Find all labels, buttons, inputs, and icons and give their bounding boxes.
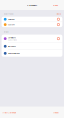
button[interactable]: Calendar info: [56, 23, 60, 27]
button[interactable]: Birthdays: [2, 43, 62, 50]
staticText: OTHER: [4, 31, 9, 33]
button[interactable]: Custom: [2, 22, 62, 27]
staticText: Calendars: [27, 3, 37, 7]
staticText: Subscribed: [8, 39, 17, 41]
staticText: Add Calendar: [2, 111, 16, 114]
staticText: ON MY IPHONE: [4, 13, 14, 15]
staticText: Inbox: [53, 111, 58, 114]
staticText: Custom: [8, 23, 15, 26]
button[interactable]: Siri Found in Apps: [2, 50, 62, 57]
staticText: US Holidays: [8, 36, 16, 39]
button[interactable]: Calendar: [2, 17, 62, 22]
button[interactable]: Hide All: [56, 13, 60, 15]
button[interactable]: US Holidays: [2, 35, 62, 43]
button[interactable]: Inbox: [53, 110, 58, 115]
staticText: Birthdays: [8, 45, 16, 48]
staticText: Siri Found in Apps: [8, 52, 20, 55]
button[interactable]: Done: [52, 2, 59, 8]
button[interactable]: Add Calendar: [2, 110, 16, 115]
button[interactable]: Calendar info: [56, 37, 60, 41]
staticText: Done: [53, 3, 58, 7]
staticText: Hide All: [56, 13, 60, 15]
button[interactable]: Calendar info: [56, 17, 60, 21]
staticText: Calendar: [8, 18, 15, 20]
